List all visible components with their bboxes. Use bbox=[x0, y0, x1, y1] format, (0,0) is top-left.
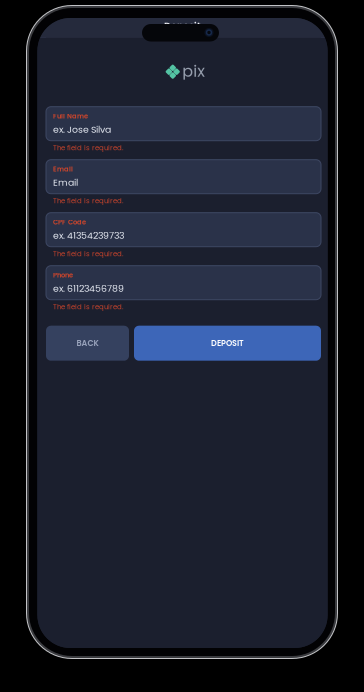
button[interactable]: DEPOSIT bbox=[134, 326, 321, 361]
staticText: ex. Jose Silva bbox=[53, 123, 111, 136]
button[interactable]: Phone bbox=[46, 266, 321, 300]
staticText: pix bbox=[182, 60, 205, 82]
staticText: The field is required. bbox=[53, 143, 123, 152]
staticText: CPF Code bbox=[53, 217, 86, 227]
button[interactable]: CPF Code bbox=[46, 213, 321, 247]
staticText: Phone bbox=[53, 270, 73, 280]
staticText: DEPOSIT bbox=[211, 338, 244, 349]
staticText: Email bbox=[53, 164, 73, 174]
staticText: Email bbox=[53, 176, 78, 189]
staticText: The field is required. bbox=[53, 249, 123, 258]
staticText: The field is required. bbox=[53, 196, 123, 205]
staticText: ex. 41354239733 bbox=[53, 229, 124, 242]
button[interactable]: Full Name bbox=[46, 107, 321, 141]
button[interactable]: Email bbox=[46, 160, 321, 194]
staticText: BACK bbox=[76, 338, 98, 349]
staticText: ex. 61123456789 bbox=[53, 282, 124, 295]
button[interactable]: BACK bbox=[46, 326, 129, 361]
staticText: Deposit bbox=[164, 19, 201, 32]
staticText: Full Name bbox=[53, 111, 88, 121]
staticText: The field is required. bbox=[53, 302, 123, 311]
